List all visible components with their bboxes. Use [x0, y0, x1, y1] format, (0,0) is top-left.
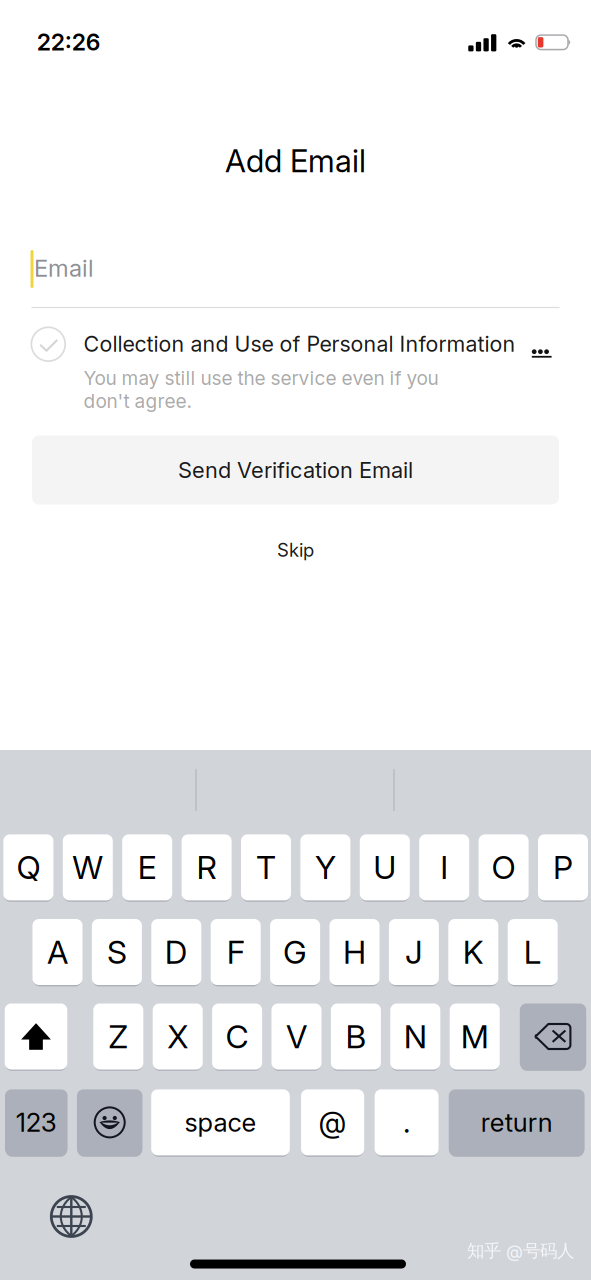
- staticText: A: [47, 933, 68, 971]
- button[interactable]: L: [508, 917, 558, 986]
- staticText: Skip: [277, 539, 314, 561]
- staticText: M: [461, 1017, 489, 1056]
- staticText: Z: [108, 1017, 128, 1056]
- staticText: N: [404, 1017, 427, 1056]
- staticText: Add Email: [225, 142, 366, 180]
- button[interactable]: H: [329, 917, 379, 986]
- button[interactable]: D: [151, 917, 201, 986]
- staticText: Q: [16, 848, 40, 887]
- staticText: You may still use the service even if yo…: [83, 366, 438, 390]
- staticText: space: [184, 1107, 256, 1138]
- staticText: 123: [16, 1107, 57, 1138]
- staticText: P: [553, 848, 573, 887]
- staticText: H: [343, 933, 366, 971]
- staticText: E: [138, 848, 157, 887]
- staticText: Send Verification Email: [178, 457, 413, 483]
- staticText: O: [492, 848, 516, 887]
- button[interactable]: I: [419, 833, 469, 902]
- button[interactable]: U: [360, 833, 410, 902]
- button[interactable]: B: [331, 1002, 381, 1071]
- button[interactable]: Q: [3, 833, 53, 902]
- button[interactable]: A: [32, 917, 82, 986]
- staticText: B: [345, 1017, 366, 1056]
- staticText: return: [481, 1107, 553, 1138]
- staticText: .: [403, 1105, 410, 1140]
- staticText: K: [463, 933, 484, 971]
- button[interactable]: T: [241, 833, 291, 902]
- button[interactable]: View details: [525, 333, 559, 367]
- button[interactable]: P: [538, 833, 588, 902]
- staticText: 知乎 @号码人: [467, 1240, 574, 1262]
- button[interactable]: S: [92, 917, 142, 986]
- staticText: G: [283, 933, 307, 971]
- staticText: I: [440, 848, 448, 887]
- staticText: D: [165, 933, 188, 971]
- button[interactable]: Send Verification Email: [32, 435, 559, 504]
- button[interactable]: K: [448, 917, 498, 986]
- button[interactable]: Emoji: [77, 1088, 142, 1157]
- staticText: Y: [315, 848, 336, 887]
- button[interactable]: return: [449, 1088, 585, 1157]
- staticText: R: [197, 848, 217, 887]
- staticText: L: [524, 933, 542, 971]
- button[interactable]: .: [375, 1088, 439, 1157]
- staticText: Email: [34, 254, 94, 282]
- button[interactable]: Y: [300, 833, 350, 902]
- staticText: S: [107, 933, 127, 971]
- button[interactable]: Shift: [5, 1002, 67, 1071]
- button[interactable]: X: [153, 1002, 203, 1071]
- button[interactable]: V: [271, 1002, 321, 1071]
- staticText: C: [226, 1017, 249, 1056]
- button[interactable]: F: [211, 917, 261, 986]
- button[interactable]: M: [450, 1002, 500, 1071]
- staticText: F: [227, 933, 245, 971]
- button[interactable]: Z: [93, 1002, 143, 1071]
- button[interactable]: N: [390, 1002, 440, 1071]
- staticText: don't agree.: [83, 389, 191, 413]
- staticText: @: [319, 1105, 347, 1140]
- staticText: J: [405, 933, 423, 971]
- button[interactable]: R: [182, 833, 232, 902]
- button[interactable]: Skip: [255, 532, 335, 568]
- staticText: U: [373, 848, 396, 887]
- staticText: T: [256, 848, 276, 887]
- button[interactable]: G: [270, 917, 320, 986]
- staticText: X: [167, 1017, 188, 1056]
- staticText: W: [72, 848, 103, 887]
- staticText: Collection and Use of Personal Informati…: [83, 331, 515, 357]
- button[interactable]: W: [63, 833, 113, 902]
- button[interactable]: @: [301, 1088, 364, 1157]
- button[interactable]: 123: [5, 1088, 68, 1157]
- button[interactable]: J: [389, 917, 439, 986]
- staticText: 22:26: [37, 28, 101, 56]
- button[interactable]: space: [151, 1088, 290, 1157]
- button[interactable]: C: [212, 1002, 262, 1071]
- button[interactable]: Delete: [520, 1002, 586, 1071]
- button[interactable]: O: [479, 833, 529, 902]
- button[interactable]: E: [122, 833, 172, 902]
- staticText: V: [286, 1017, 307, 1056]
